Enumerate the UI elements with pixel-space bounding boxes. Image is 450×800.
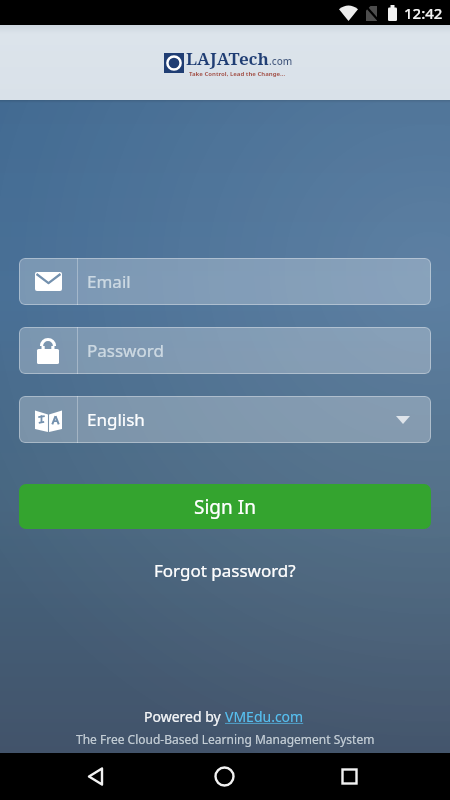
button[interactable] bbox=[87, 767, 104, 786]
button[interactable] bbox=[341, 768, 358, 785]
staticText: Take Control, Lead the Change... bbox=[189, 70, 286, 78]
staticText: .com bbox=[269, 54, 293, 68]
staticText: 12:42 bbox=[404, 3, 443, 23]
button[interactable] bbox=[214, 766, 235, 787]
staticText: Password bbox=[87, 339, 164, 362]
button[interactable]: Password bbox=[19, 327, 431, 374]
staticText: English bbox=[87, 408, 145, 431]
staticText: Forgot password? bbox=[154, 559, 296, 582]
staticText: VMEdu.com bbox=[225, 707, 307, 726]
staticText: LAJATech bbox=[186, 47, 269, 70]
button[interactable]: Email bbox=[19, 258, 431, 305]
button[interactable]: Sign In bbox=[19, 484, 431, 529]
button[interactable]: VMEdu.com bbox=[225, 707, 307, 726]
staticText: Sign In bbox=[194, 494, 256, 520]
staticText: The Free Cloud-Based Learning Management… bbox=[76, 731, 375, 747]
button[interactable]: English bbox=[19, 396, 431, 443]
staticText: Powered by bbox=[144, 707, 225, 726]
staticText: Email bbox=[87, 270, 131, 293]
button[interactable]: Forgot password? bbox=[154, 559, 296, 582]
